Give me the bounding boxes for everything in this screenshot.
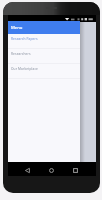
- button[interactable]: Our Marketplace: [8, 64, 80, 79]
- button[interactable]: Menu: [8, 21, 80, 34]
- staticText: Researchers: [11, 52, 31, 56]
- staticText: Research Papers: [11, 37, 38, 41]
- staticText: Menu: [11, 25, 23, 31]
- button[interactable]: Research Papers: [8, 34, 80, 49]
- button[interactable]: Home: [45, 164, 57, 176]
- button[interactable]: Recent apps: [69, 164, 81, 176]
- button[interactable]: Researchers: [8, 49, 80, 64]
- button[interactable]: Back: [21, 164, 33, 176]
- staticText: Our Marketplace: [11, 67, 38, 71]
